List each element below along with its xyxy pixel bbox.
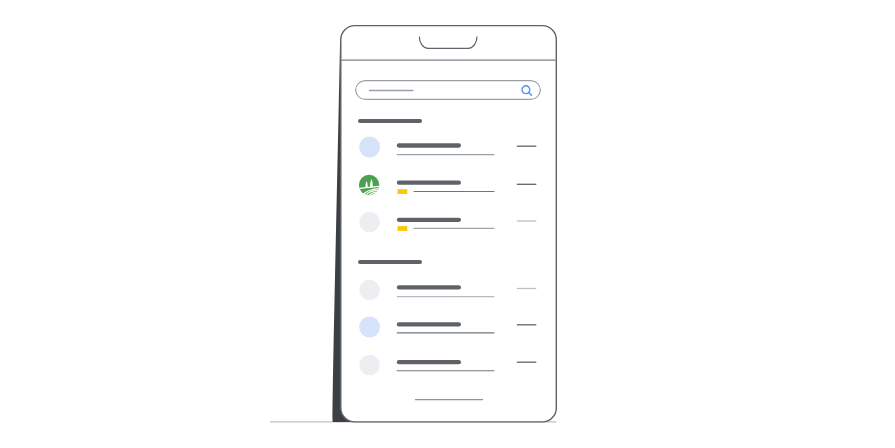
button[interactable]: List item 6	[341, 347, 557, 383]
button[interactable]: List item 4	[341, 272, 557, 308]
button[interactable]: List item 5	[341, 309, 557, 345]
button[interactable]: Show more	[415, 395, 483, 404]
button[interactable]: List item 2	[341, 167, 557, 203]
button[interactable]: Search	[355, 80, 541, 100]
button[interactable]: List item 1	[341, 129, 557, 165]
button[interactable]: Section header	[358, 116, 422, 126]
button[interactable]: List item 3	[341, 204, 557, 240]
button[interactable]: Section header	[358, 257, 422, 267]
